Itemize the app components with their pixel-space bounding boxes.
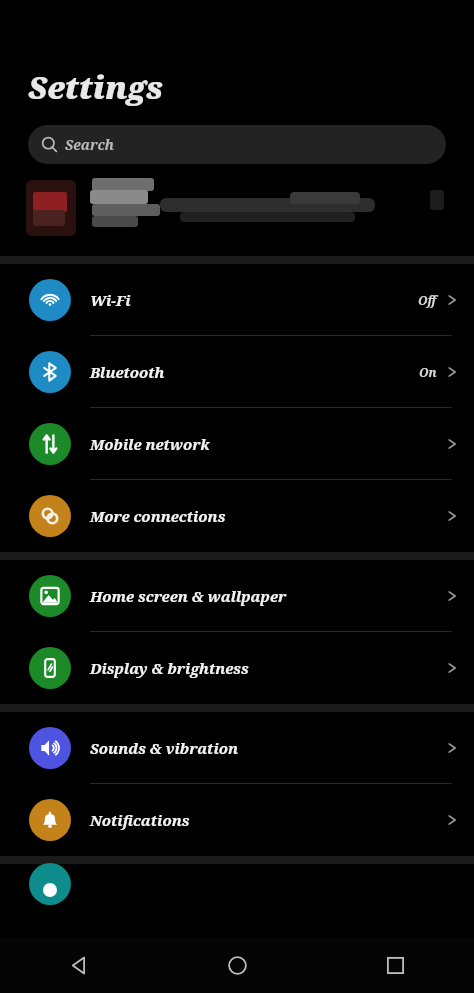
staticText: Sounds & vibration [90,738,239,758]
staticText: Display & brightness [90,658,249,678]
button[interactable]: Home [158,938,316,993]
staticText: On [419,364,437,380]
button[interactable]: Home screen & wallpaper [0,560,474,632]
button[interactable]: Wi-Fi [0,264,474,336]
staticText: Notifications [90,810,190,830]
staticText: Mobile network [90,434,210,454]
button[interactable]: Back [0,938,158,993]
staticText: Settings [28,66,164,108]
button[interactable] [0,164,474,256]
staticText: Off [418,292,437,308]
staticText: Wi-Fi [90,290,131,310]
button[interactable]: More connections [0,480,474,552]
button[interactable]: Sounds & vibration [0,712,474,784]
staticText: Home screen & wallpaper [90,586,287,606]
button[interactable]: Recent apps [316,938,474,993]
button[interactable]: Display & brightness [0,632,474,704]
staticText: Search [65,135,115,154]
button[interactable] [0,864,474,882]
staticText: Bluetooth [90,362,165,382]
button[interactable]: Bluetooth [0,336,474,408]
button[interactable]: Notifications [0,784,474,856]
button[interactable]: Mobile network [0,408,474,480]
button[interactable]: Search [28,125,446,164]
staticText: More connections [90,506,226,526]
